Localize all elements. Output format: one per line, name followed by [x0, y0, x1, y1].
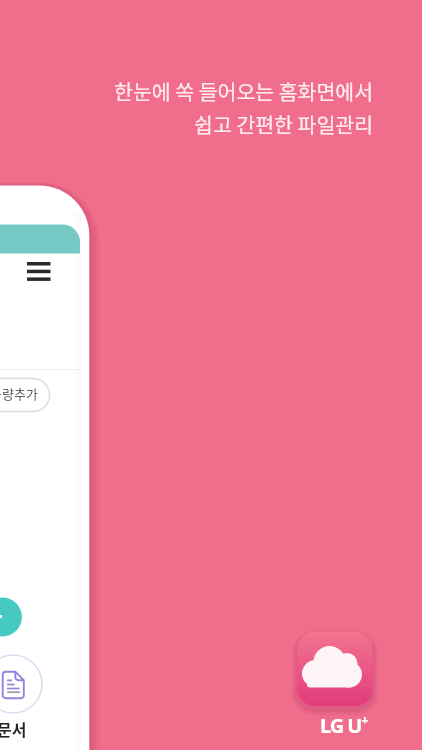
button[interactable]: Upload — [0, 597, 23, 637]
button[interactable]: Open navigation menu — [16, 252, 62, 298]
button[interactable]: LG U+ Cloud app icon — [297, 632, 373, 706]
button[interactable]: 문서 — [0, 652, 44, 750]
button[interactable]: 용량추가 — [0, 378, 50, 412]
staticText: LG U⁺ — [320, 712, 368, 739]
staticText: 문서 — [0, 717, 27, 740]
staticText: 한눈에 쏙 들어오는 홈화면에서 — [114, 76, 373, 106]
staticText: 쉽고 간편한 파일관리 — [194, 109, 373, 139]
staticText: 용량추가 — [0, 384, 38, 403]
